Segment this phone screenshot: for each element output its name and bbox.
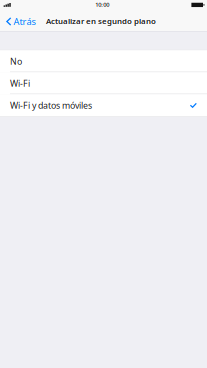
button[interactable]: Wi-Fi y datos móviles xyxy=(0,94,207,116)
staticText: 10:00 xyxy=(95,1,109,8)
staticText: Wi-Fi y datos móviles xyxy=(10,99,92,111)
staticText: Atrás xyxy=(14,15,36,28)
button[interactable]: Wi-Fi xyxy=(0,72,207,94)
staticText: Actualizar en segundo plano xyxy=(46,16,156,26)
staticText: Wi-Fi xyxy=(10,77,30,89)
button[interactable]: No xyxy=(0,50,207,72)
button[interactable]: Atrás xyxy=(0,13,40,32)
staticText: No xyxy=(10,55,22,67)
